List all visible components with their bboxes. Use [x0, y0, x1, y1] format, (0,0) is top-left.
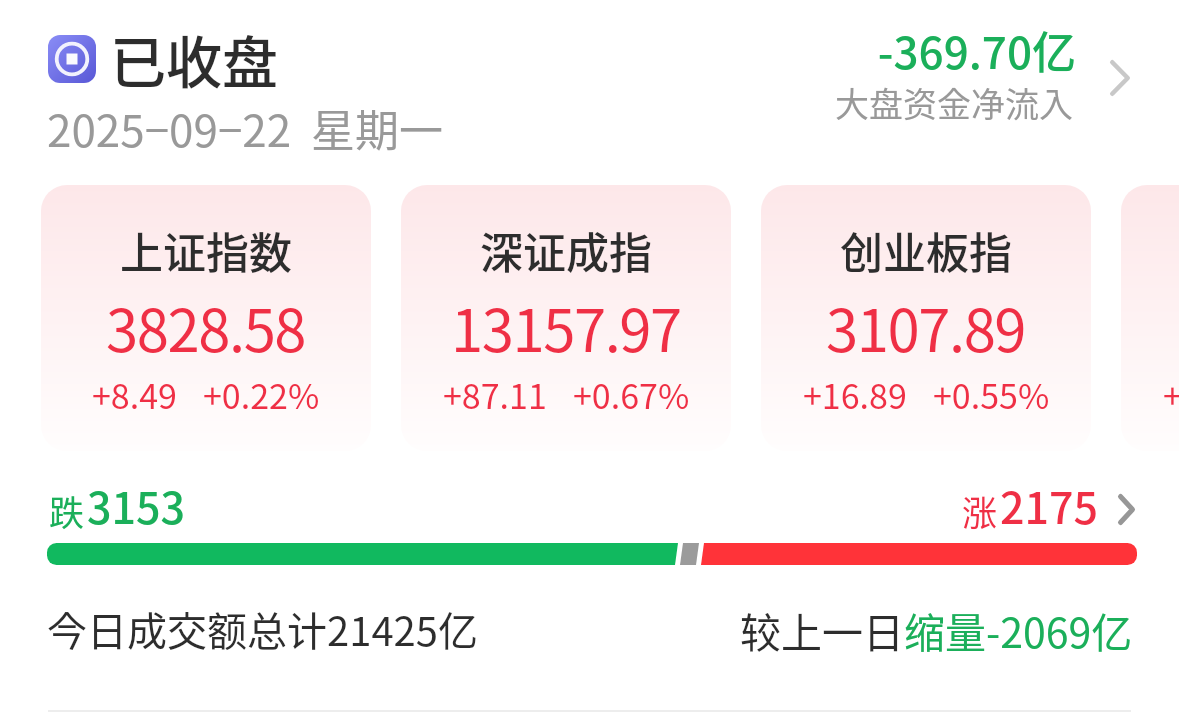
button[interactable]: 涨: [700, 474, 1135, 536]
button[interactable]: 深证成指: [401, 185, 731, 451]
staticText: 3828.58: [106, 285, 306, 369]
staticText: 今日成交额总计21425亿: [47, 600, 478, 658]
staticText: +16.89: [803, 370, 907, 419]
staticText: 大盘资金净流入: [835, 78, 1073, 127]
other: 涨跌家数详情: [1118, 494, 1135, 525]
staticText: 较上一日缩量-2069亿: [740, 600, 1133, 659]
staticText: +0.67%: [573, 370, 690, 419]
staticText: 跌: [49, 485, 85, 536]
staticText: 已收盘: [110, 18, 278, 99]
staticText: 3153: [87, 474, 186, 536]
staticText: 涨: [962, 485, 998, 536]
staticText: 2025−09−22 星期一: [47, 96, 443, 160]
button[interactable]: 创业板指: [761, 185, 1091, 451]
staticText: 3107.89: [826, 285, 1026, 369]
button[interactable]: 已收盘: [48, 18, 278, 99]
staticText: +20.15: [1163, 370, 1179, 419]
staticText: 创业板指: [840, 219, 1012, 281]
staticText: +87.11: [443, 370, 547, 419]
staticText: +8.49: [92, 370, 177, 419]
staticText: 2175: [1000, 474, 1099, 536]
button[interactable]: -369.70亿: [600, 14, 1135, 139]
staticText: 深证成指: [480, 219, 652, 281]
staticText: -369.70亿: [877, 18, 1076, 82]
staticText: 13157.97: [451, 285, 681, 369]
button[interactable]: 跌: [49, 474, 186, 536]
other: 大盘资金净流入详情: [1110, 60, 1130, 96]
staticText: 上证指数: [120, 219, 292, 281]
staticText: +0.22%: [203, 370, 320, 419]
button[interactable]: 科创50: [1121, 185, 1179, 451]
other: 涨跌比例: [47, 543, 1137, 565]
button[interactable]: 上证指数: [41, 185, 371, 451]
staticText: +0.55%: [933, 370, 1050, 419]
